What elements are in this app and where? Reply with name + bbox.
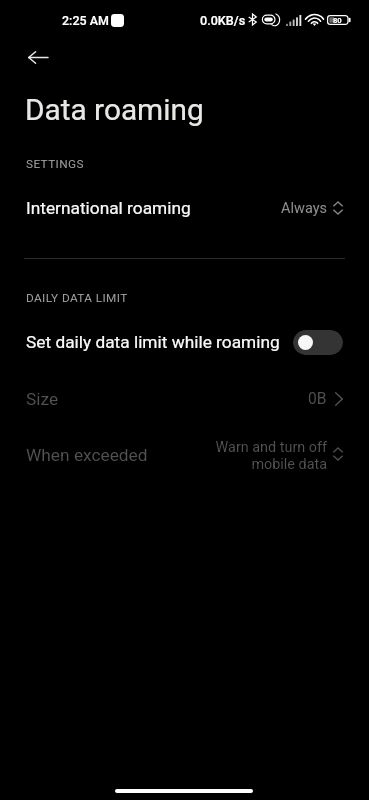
button[interactable]: Set daily data limit while roaming xyxy=(0,324,369,360)
staticText: 0B xyxy=(308,390,327,408)
button[interactable]: When exceeded xyxy=(0,437,369,473)
staticText: DAILY DATA LIMIT xyxy=(26,291,128,305)
staticText: 2:25 AM xyxy=(62,13,109,28)
staticText: International roaming xyxy=(26,198,191,218)
button[interactable]: Set daily data limit while roaming xyxy=(293,330,343,355)
button[interactable]: Size xyxy=(0,381,369,417)
staticText: Size xyxy=(26,389,59,409)
button[interactable]: Navigate up xyxy=(19,39,56,76)
staticText: When exceeded xyxy=(26,445,148,465)
staticText: 80 xyxy=(333,16,342,25)
staticText: Warn and turn off mobile data xyxy=(215,439,327,472)
staticText: Data roaming xyxy=(25,92,204,127)
staticText: 0.0KB/s xyxy=(200,13,246,28)
button[interactable]: International roaming xyxy=(0,190,369,226)
staticText: SETTINGS xyxy=(26,157,84,171)
staticText: Set daily data limit while roaming xyxy=(26,332,280,352)
staticText: Always xyxy=(281,200,328,217)
